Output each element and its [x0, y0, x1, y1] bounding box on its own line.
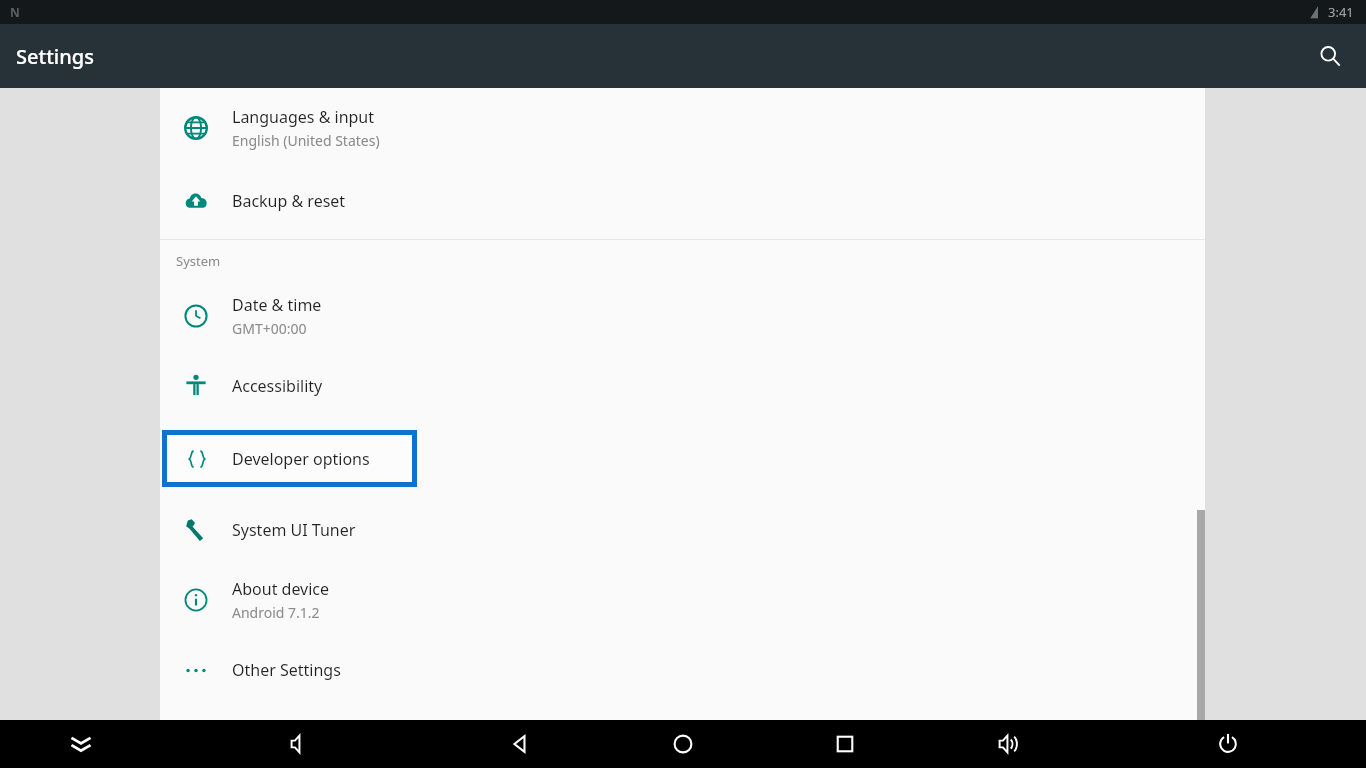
button[interactable]: Home	[602, 720, 763, 768]
staticText: System UI Tuner	[232, 519, 356, 541]
staticText: About device	[232, 578, 330, 600]
staticText: System	[176, 252, 221, 270]
staticText: Accessibility	[232, 375, 323, 397]
button[interactable]: Languages & input	[160, 94, 1205, 162]
staticText: GMT+00:00	[232, 319, 307, 338]
staticText: Settings	[16, 43, 94, 70]
staticText: 3:41	[1328, 3, 1354, 21]
button[interactable]: Date & time	[160, 282, 1205, 350]
button[interactable]: Hide keyboard	[0, 720, 161, 768]
staticText: Backup & reset	[232, 190, 346, 212]
button[interactable]: Developer options	[162, 430, 417, 487]
button[interactable]: About device	[160, 566, 1205, 634]
staticText: Other Settings	[232, 659, 341, 681]
button[interactable]: Accessibility	[160, 350, 1205, 422]
staticText: Date & time	[232, 294, 322, 316]
button[interactable]: Back	[438, 720, 602, 768]
staticText: Android 7.1.2	[232, 603, 320, 622]
staticText: Developer options	[232, 448, 370, 470]
staticText: N	[10, 4, 20, 20]
button[interactable]: Volume down	[161, 720, 438, 768]
button[interactable]: System UI Tuner	[160, 494, 1205, 566]
button[interactable]: Power	[1089, 720, 1366, 768]
button[interactable]: Volume up	[926, 720, 1089, 768]
staticText: Languages & input	[232, 106, 375, 128]
button[interactable]: Backup & reset	[160, 162, 1205, 239]
staticText: English (United States)	[232, 131, 380, 150]
button[interactable]: Recents	[763, 720, 926, 768]
button[interactable]: Other Settings	[160, 634, 1205, 706]
button[interactable]: Search	[1308, 34, 1352, 78]
